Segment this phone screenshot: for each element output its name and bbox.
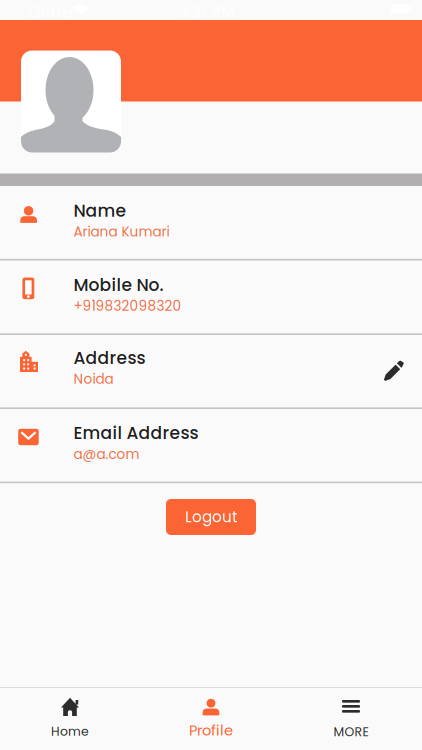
staticText: Email Address [73, 421, 198, 445]
button[interactable]: Edit address [372, 352, 422, 750]
staticText: Home [51, 723, 89, 740]
staticText: Mobile No. [73, 273, 163, 297]
staticText: Logout [185, 506, 237, 528]
staticText: Profile [189, 720, 233, 741]
staticText: 3:31 PM [180, 1, 234, 21]
staticText: Name [73, 199, 126, 223]
button[interactable]: Profile [161, 692, 422, 750]
button[interactable]: Logout [166, 499, 256, 535]
button[interactable]: Profile photo [21, 50, 121, 152]
staticText: a@a.com [73, 445, 139, 464]
staticText: MORE [333, 723, 368, 741]
button[interactable]: MORE [301, 692, 422, 750]
staticText: Noida [73, 369, 113, 388]
staticText: +919832098320 [73, 296, 181, 315]
staticText: Address [73, 346, 145, 370]
staticText: Carrier [28, 1, 75, 21]
staticText: Ariana Kumari [73, 222, 169, 241]
button[interactable]: Home [20, 692, 422, 750]
